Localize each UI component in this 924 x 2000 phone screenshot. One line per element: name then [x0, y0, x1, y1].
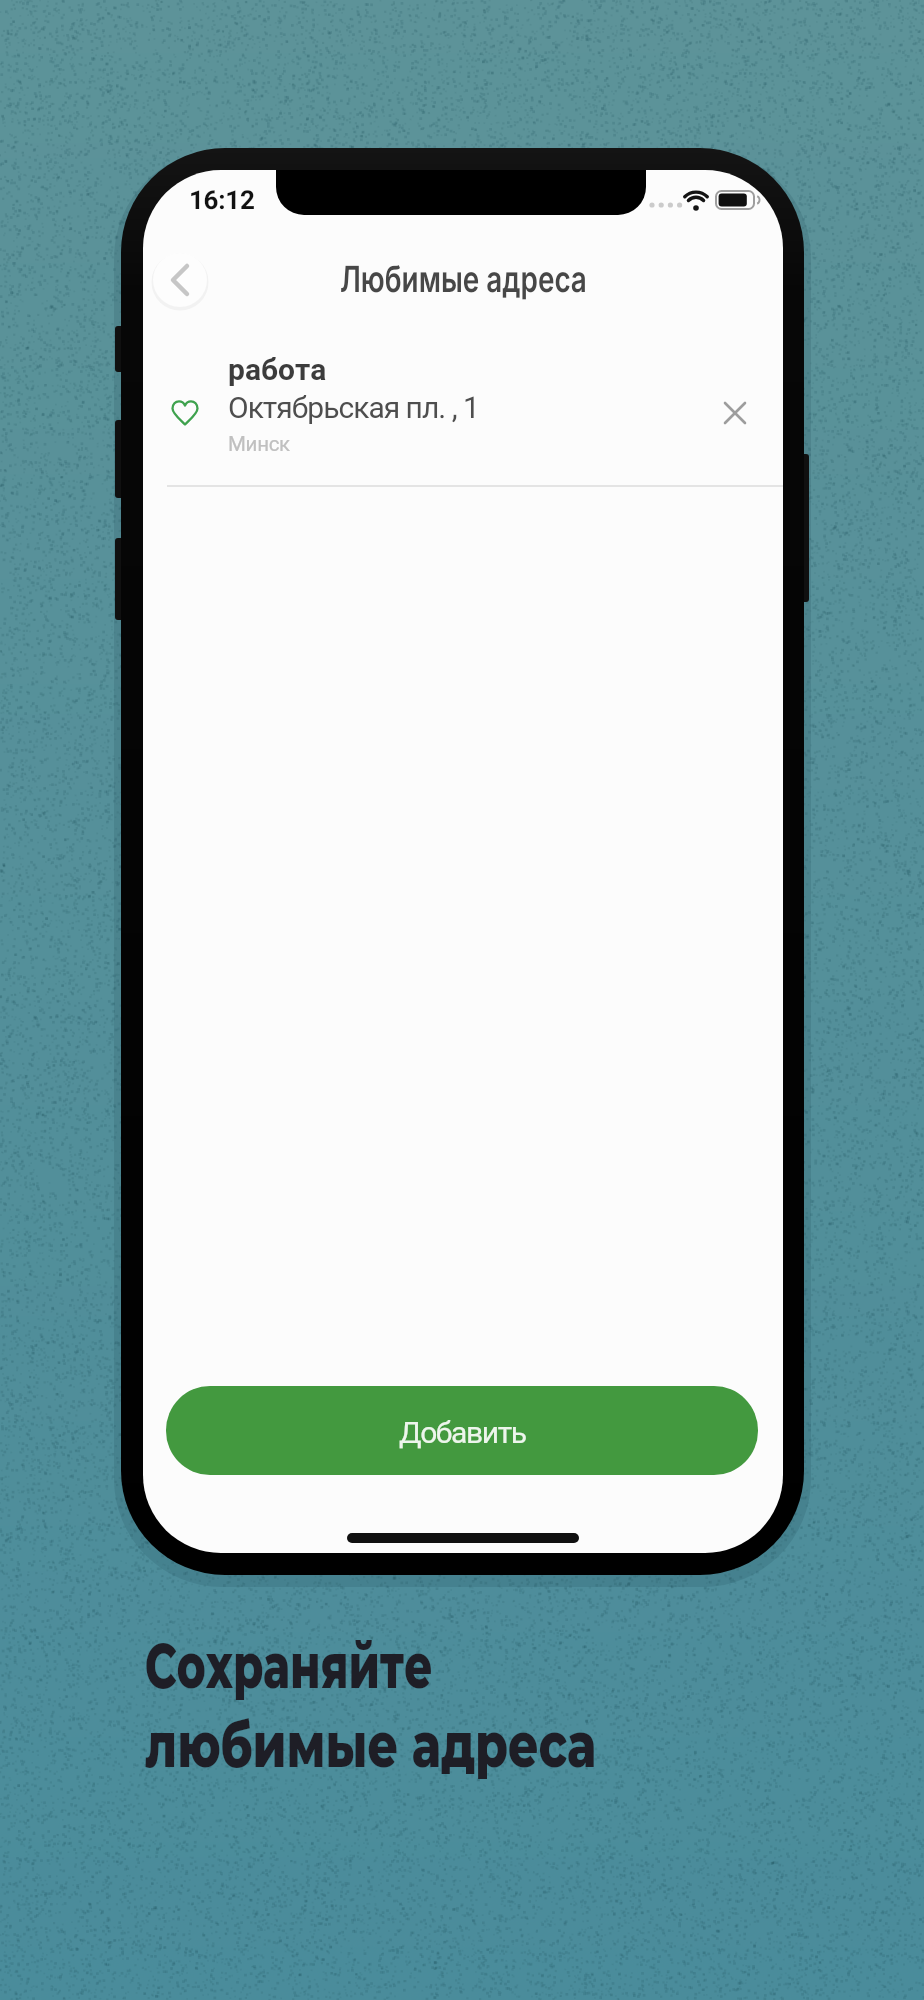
button[interactable]: [709, 352, 769, 452]
staticText: Добавить: [399, 1415, 526, 1450]
staticText: Минск: [228, 432, 290, 456]
button[interactable]: [153, 253, 207, 307]
staticText: Октябрьская пл. , 1: [228, 390, 479, 425]
staticText: любимые адреса: [145, 1706, 596, 1783]
button[interactable]: Добавить: [166, 1386, 758, 1475]
staticText: Сохраняйте: [145, 1627, 433, 1704]
staticText: Любимые адреса: [340, 257, 587, 301]
button[interactable]: работа: [143, 352, 783, 456]
staticText: 16:12: [189, 185, 255, 215]
staticText: работа: [228, 352, 327, 387]
